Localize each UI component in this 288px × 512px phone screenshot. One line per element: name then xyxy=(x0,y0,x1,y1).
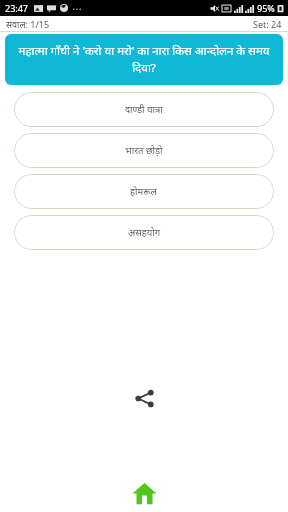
staticText: Set: 24 xyxy=(253,18,282,30)
staticText: 23:47 xyxy=(5,2,29,14)
staticText: सवाल: 1/15 xyxy=(6,18,50,30)
button[interactable]: Share xyxy=(127,381,161,415)
button[interactable]: Home xyxy=(129,478,159,508)
button[interactable]: दाण्डी यात्रा xyxy=(14,92,274,127)
staticText: दाण्डी यात्रा xyxy=(125,103,163,116)
staticText: 95% xyxy=(257,2,275,14)
staticText: असहयोग xyxy=(128,226,161,239)
staticText: भारत छोड़ो xyxy=(125,144,163,157)
staticText: होमरूल xyxy=(130,185,158,198)
button[interactable]: होमरूल xyxy=(14,174,274,209)
staticText: महात्मा गाँधी ने 'करो या मरो' का नारा कि… xyxy=(15,43,273,76)
button[interactable]: असहयोग xyxy=(14,215,274,250)
button[interactable]: भारत छोड़ो xyxy=(14,133,274,168)
